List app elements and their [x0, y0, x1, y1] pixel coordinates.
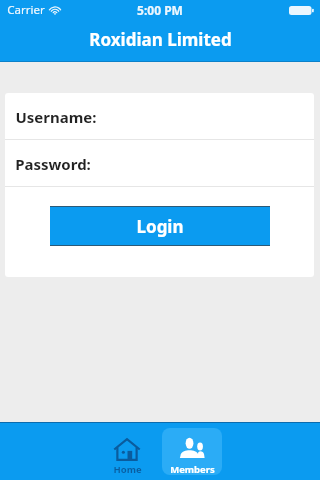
- button[interactable]: Members: [162, 428, 222, 475]
- staticText: Home: [113, 463, 142, 475]
- staticText: Login: [136, 215, 184, 238]
- staticText: Roxidian Limited: [89, 28, 232, 51]
- button[interactable]: Password:: [5, 140, 314, 186]
- staticText: Username:: [15, 107, 97, 127]
- other: Home: [114, 438, 140, 461]
- button[interactable]: Home: [97, 428, 157, 475]
- other: Members: [179, 437, 205, 458]
- staticText: Members: [170, 463, 215, 475]
- button[interactable]: Login: [50, 207, 270, 245]
- staticText: 5:00 PM: [137, 2, 183, 18]
- staticText: Carrier: [7, 2, 45, 18]
- staticText: Password:: [15, 154, 91, 174]
- button[interactable]: Username:: [5, 93, 314, 139]
